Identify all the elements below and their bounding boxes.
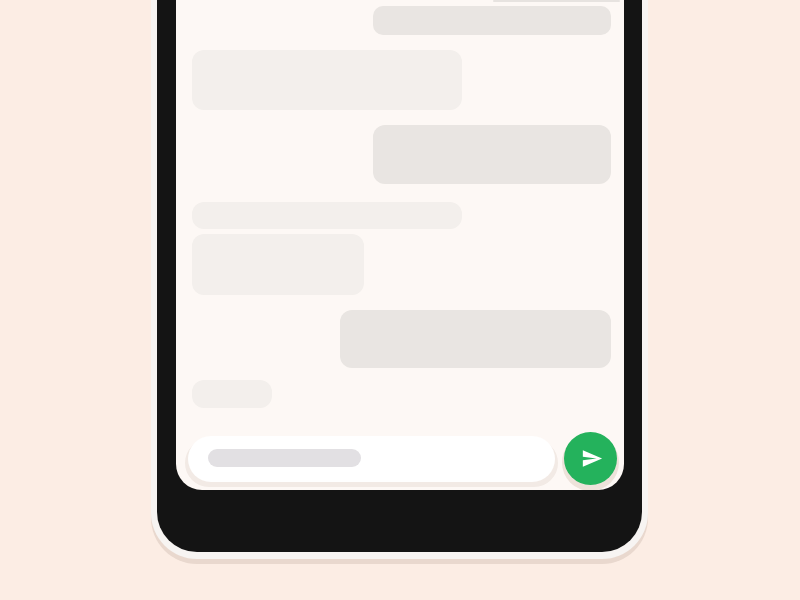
button[interactable] (188, 436, 555, 482)
button[interactable] (564, 432, 617, 485)
